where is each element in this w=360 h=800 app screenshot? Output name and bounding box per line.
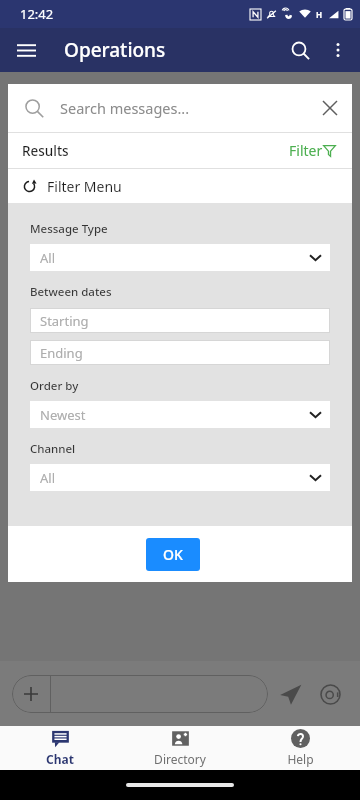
staticText: Chat xyxy=(46,751,74,767)
staticText: Ending xyxy=(40,344,83,362)
button[interactable]: Menu xyxy=(8,32,44,68)
staticText: Operations xyxy=(64,37,166,63)
button[interactable]: Help xyxy=(240,726,360,770)
button[interactable]: Ending xyxy=(30,340,330,365)
staticText: Starting xyxy=(40,312,89,330)
button[interactable]: All xyxy=(30,244,330,271)
staticText: Directory xyxy=(154,751,206,767)
staticText: Results xyxy=(22,142,69,160)
staticText: Filter Menu xyxy=(47,177,122,196)
button[interactable]: Search messages... xyxy=(8,84,352,132)
button[interactable]: Filter xyxy=(287,137,338,164)
staticText: Order by xyxy=(30,378,79,394)
button[interactable]: Clear search xyxy=(308,84,352,132)
staticText: Channel xyxy=(30,441,76,457)
button[interactable]: Mention xyxy=(312,676,348,712)
staticText: 12:42 xyxy=(20,5,54,23)
staticText: H xyxy=(316,9,323,20)
staticText: Message Type xyxy=(30,221,108,237)
staticText: Search messages... xyxy=(60,98,308,118)
staticText: All xyxy=(40,249,310,267)
staticText: OK xyxy=(163,545,183,564)
button[interactable]: Send xyxy=(268,672,312,716)
staticText: All xyxy=(40,469,310,487)
button[interactable]: Chat xyxy=(0,726,120,770)
button[interactable] xyxy=(12,675,268,713)
button[interactable]: Filter Menu xyxy=(8,169,352,203)
button[interactable]: Newest xyxy=(30,401,330,428)
staticText: Between dates xyxy=(30,284,112,300)
button[interactable]: Starting xyxy=(30,308,330,333)
staticText: Newest xyxy=(40,406,310,424)
button[interactable]: More options xyxy=(320,32,356,68)
button[interactable]: All xyxy=(30,464,330,491)
staticText: Help xyxy=(287,751,314,767)
staticText: Filter xyxy=(289,141,323,160)
button[interactable]: Directory xyxy=(120,726,240,770)
button[interactable]: OK xyxy=(146,538,200,571)
button[interactable]: Search xyxy=(280,30,320,70)
